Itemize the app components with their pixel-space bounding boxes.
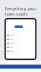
button[interactable]: List item [6, 33, 17, 37]
staticText: in one calm place [5, 18, 35, 23]
button[interactable]: Get started [14, 25, 23, 28]
button[interactable]: List item [6, 49, 17, 53]
button[interactable]: List item [6, 41, 17, 45]
button[interactable]: List item [6, 45, 17, 49]
button[interactable]: List item [6, 37, 17, 41]
staticText: Everything your team needs [4, 6, 36, 17]
